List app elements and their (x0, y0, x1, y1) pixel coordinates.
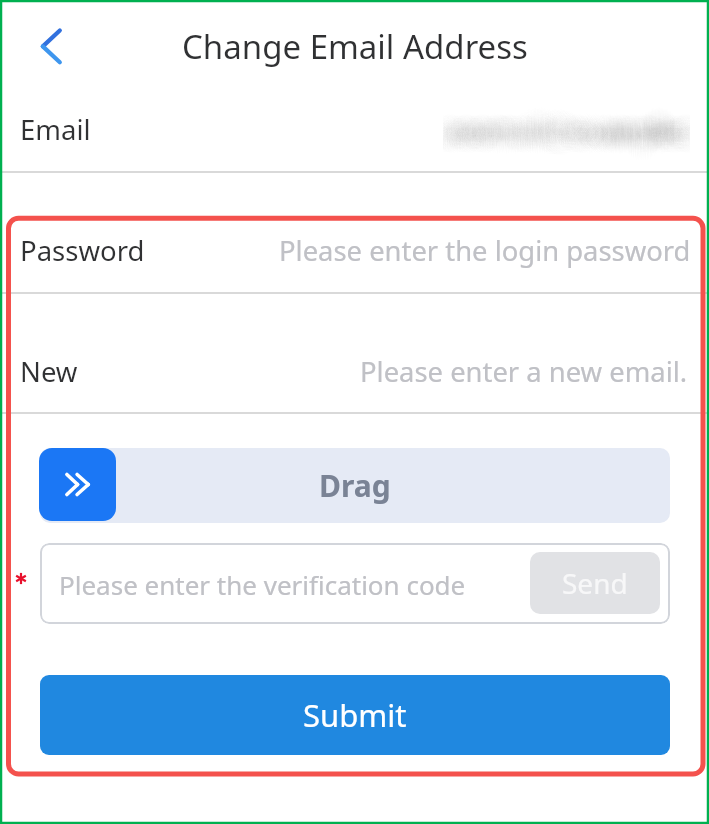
staticText: aoomail@exampleo.com (443, 103, 682, 140)
staticText: aoomail@exampleo.com (446, 125, 690, 160)
staticText: aoomail@exampleo.com (443, 97, 689, 134)
staticText: aoomail@exampleo.com (446, 128, 690, 160)
staticText: aoomail@exampleo.com (443, 111, 690, 148)
staticText: aoomail@exampleo.com (451, 121, 690, 158)
staticText: aoomail@exampleo.com (453, 124, 690, 160)
staticText: aoomail@exampleo.com (443, 108, 676, 145)
button[interactable]: Submit (40, 675, 670, 755)
staticText: aoomail@exampleo.com (443, 122, 676, 159)
staticText: aoomail@exampleo.com (447, 112, 690, 149)
staticText: aoomail@exampleo.com (457, 118, 690, 155)
staticText: aoomail@exampleo.com (443, 113, 675, 150)
staticText: aoomail@exampleo.com (443, 100, 684, 137)
staticText: aoomail@exampleo.com (443, 101, 681, 138)
staticText: aoomail@exampleo.com (450, 105, 690, 142)
staticText: aoomail@exampleo.com (452, 121, 690, 158)
staticText: aoomail@exampleo.com (443, 120, 683, 157)
staticText: aoomail@exampleo.com (443, 114, 683, 151)
staticText: aoomail@exampleo.com (443, 114, 674, 151)
staticText: aoomail@exampleo.com (443, 120, 679, 157)
staticText: aoomail@exampleo.com (443, 111, 674, 148)
staticText: Please enter the login password (279, 232, 691, 269)
staticText: aoomail@exampleo.com (443, 102, 684, 139)
staticText: aoomail@exampleo.com (451, 109, 690, 146)
staticText: aoomail@exampleo.com (443, 112, 682, 149)
staticText: aoomail@exampleo.com (451, 101, 690, 138)
staticText: aoomail@exampleo.com (456, 104, 690, 141)
staticText: aoomail@exampleo.com (443, 113, 683, 150)
staticText: aoomail@exampleo.com (447, 126, 690, 160)
staticText: aoomail@exampleo.com (443, 117, 682, 154)
button[interactable]: New (0, 293, 709, 413)
staticText: aoomail@exampleo.com (443, 116, 677, 153)
staticText: aoomail@exampleo.com (443, 108, 675, 145)
staticText: aoomail@exampleo.com (443, 111, 683, 148)
staticText: aoomail@exampleo.com (447, 125, 690, 160)
staticText: aoomail@exampleo.com (443, 110, 689, 147)
staticText: aoomail@exampleo.com (459, 120, 690, 157)
staticText: aoomail@exampleo.com (459, 108, 690, 145)
staticText: aoomail@exampleo.com (443, 118, 688, 155)
staticText: aoomail@exampleo.com (443, 107, 675, 144)
staticText: aoomail@exampleo.com (446, 119, 690, 156)
staticText: aoomail@exampleo.com (443, 113, 685, 150)
staticText: aoomail@exampleo.com (457, 103, 690, 140)
staticText: aoomail@exampleo.com (444, 121, 690, 158)
staticText: aoomail@exampleo.com (443, 109, 676, 146)
staticText: aoomail@exampleo.com (443, 119, 683, 156)
staticText: aoomail@exampleo.com (443, 117, 676, 154)
staticText: aoomail@exampleo.com (443, 96, 690, 133)
staticText: aoomail@exampleo.com (448, 110, 690, 147)
staticText: aoomail@exampleo.com (444, 112, 690, 149)
staticText: aoomail@exampleo.com (452, 112, 690, 149)
staticText: aoomail@exampleo.com (444, 110, 690, 147)
staticText: aoomail@exampleo.com (454, 123, 690, 160)
staticText: aoomail@exampleo.com (457, 116, 690, 153)
staticText: aoomail@exampleo.com (443, 126, 686, 160)
staticText: aoomail@exampleo.com (445, 101, 690, 138)
staticText: aoomail@exampleo.com (443, 104, 682, 141)
staticText: aoomail@exampleo.com (443, 108, 680, 145)
button[interactable]: Send (530, 552, 660, 614)
staticText: aoomail@exampleo.com (451, 100, 690, 137)
staticText: aoomail@exampleo.com (443, 109, 687, 146)
staticText: aoomail@exampleo.com (443, 102, 674, 139)
staticText: aoomail@exampleo.com (462, 116, 690, 153)
button[interactable]: Password (0, 210, 709, 292)
staticText: aoomail@exampleo.com (459, 102, 690, 139)
staticText: aoomail@exampleo.com (443, 110, 673, 147)
staticText: aoomail@exampleo.com (446, 123, 690, 160)
staticText: aoomail@exampleo.com (449, 121, 690, 158)
staticText: aoomail@exampleo.com (443, 113, 687, 150)
staticText: aoomail@exampleo.com (445, 126, 690, 160)
button[interactable]: Back (22, 19, 78, 75)
staticText: aoomail@exampleo.com (457, 119, 690, 156)
button[interactable]: Please enter the verification code (40, 543, 670, 624)
staticText: aoomail@exampleo.com (446, 113, 690, 150)
staticText: aoomail@exampleo.com (443, 99, 685, 136)
staticText: aoomail@exampleo.com (451, 124, 690, 160)
staticText: aoomail@exampleo.com (460, 119, 690, 156)
staticText: aoomail@exampleo.com (452, 114, 690, 151)
staticText: aoomail@exampleo.com (443, 113, 671, 150)
staticText: aoomail@exampleo.com (447, 118, 690, 155)
button[interactable]: Drag slider (39, 448, 116, 521)
staticText: aoomail@exampleo.com (447, 99, 690, 136)
staticText: aoomail@exampleo.com (443, 106, 687, 143)
staticText: aoomail@exampleo.com (447, 97, 690, 134)
staticText: aoomail@exampleo.com (443, 100, 683, 137)
staticText: aoomail@exampleo.com (459, 107, 690, 144)
button[interactable]: Email (0, 88, 709, 172)
staticText: aoomail@exampleo.com (454, 106, 690, 143)
staticText: aoomail@exampleo.com (459, 105, 690, 142)
button[interactable]: Drag (40, 448, 670, 523)
staticText: aoomail@exampleo.com (459, 115, 690, 152)
staticText: aoomail@exampleo.com (456, 109, 690, 146)
staticText: aoomail@exampleo.com (443, 115, 681, 152)
staticText: aoomail@exampleo.com (443, 112, 684, 149)
staticText: aoomail@exampleo.com (443, 107, 678, 144)
staticText: aoomail@exampleo.com (443, 123, 688, 160)
staticText: aoomail@exampleo.com (445, 117, 690, 154)
staticText: aoomail@exampleo.com (443, 97, 683, 134)
staticText: aoomail@exampleo.com (458, 112, 690, 149)
